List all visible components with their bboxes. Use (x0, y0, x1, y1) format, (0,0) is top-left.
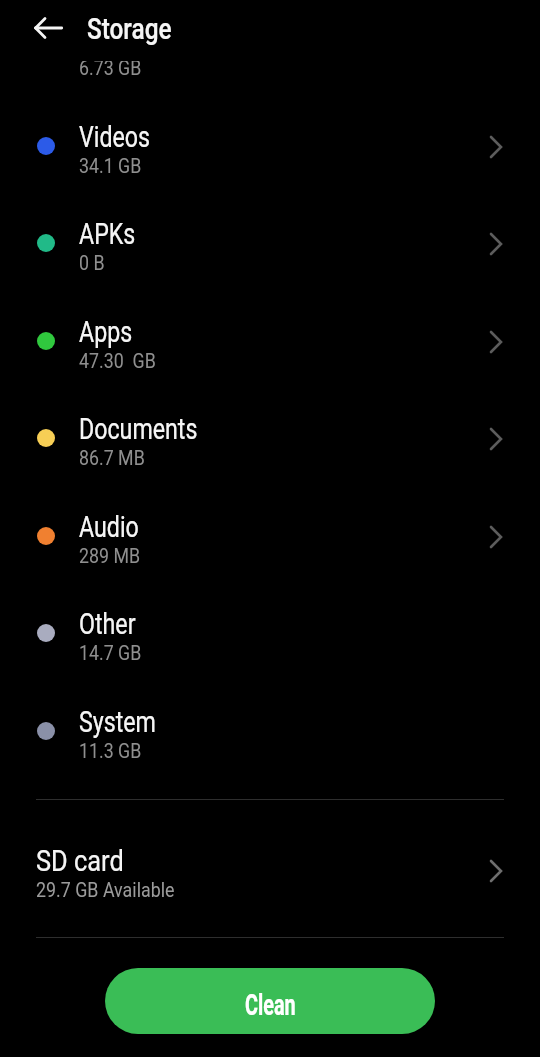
button[interactable]: Audio (0, 488, 540, 586)
button[interactable]: System (0, 683, 540, 781)
staticText: Clean (245, 987, 296, 1022)
staticText: Images (79, 22, 156, 56)
staticText: 289 MB (79, 544, 140, 567)
staticText: 47.30 GB (79, 349, 156, 372)
button[interactable]: Documents (0, 390, 540, 488)
staticText: APKs (79, 217, 136, 251)
staticText: 6.73 GB (79, 56, 142, 79)
staticText: Videos (79, 120, 150, 154)
button[interactable]: Clean (105, 968, 435, 1034)
staticText: 14.7 GB (79, 641, 142, 664)
staticText: 11.3 GB (79, 739, 142, 762)
staticText: Other (79, 607, 136, 641)
staticText: 29.7 GB Available (36, 878, 175, 902)
button[interactable]: Videos (0, 98, 540, 196)
staticText: 34.1 GB (79, 154, 142, 177)
button[interactable]: Apps (0, 293, 540, 391)
button[interactable]: APKs (0, 195, 540, 293)
staticText: Apps (79, 315, 133, 349)
staticText: SD card (36, 844, 124, 878)
staticText: Documents (79, 412, 198, 446)
staticText: 0 B (79, 251, 105, 274)
button[interactable]: Other (0, 585, 540, 683)
staticText: Storage (87, 12, 172, 46)
staticText: System (79, 705, 157, 739)
button[interactable]: Images (0, 0, 540, 98)
button[interactable]: SD card (0, 800, 540, 937)
staticText: Audio (79, 510, 139, 544)
staticText: 86.7 MB (79, 446, 145, 469)
button[interactable] (25, 7, 69, 49)
